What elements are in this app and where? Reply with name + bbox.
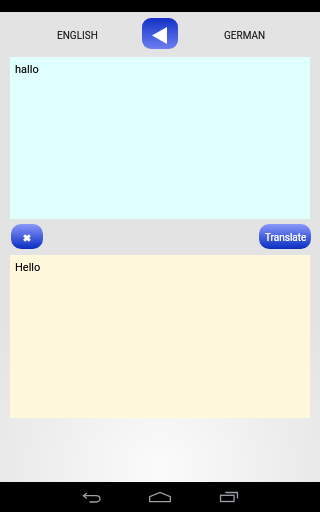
button[interactable]: ENGLISH (12, 12, 142, 57)
button[interactable]: Swap languages (142, 18, 178, 49)
staticText: Hello (15, 261, 41, 274)
staticText: ENGLISH (57, 30, 98, 42)
button[interactable]: Translate (259, 224, 311, 249)
button[interactable]: Clear text (11, 224, 43, 249)
staticText: hallo (15, 63, 39, 76)
staticText: Translate (265, 232, 307, 244)
staticText: GERMAN (224, 30, 266, 42)
button[interactable]: hallo (10, 57, 310, 219)
button[interactable]: Recent apps (195, 482, 263, 512)
button[interactable]: GERMAN (179, 12, 309, 57)
button[interactable]: Hello (10, 255, 310, 418)
button[interactable]: Home (126, 482, 194, 512)
staticText: GERMAN (224, 30, 266, 42)
staticText: Hello (15, 261, 41, 274)
button[interactable]: Back (58, 482, 126, 512)
staticText: ENGLISH (57, 30, 98, 42)
staticText: hallo (15, 63, 39, 76)
